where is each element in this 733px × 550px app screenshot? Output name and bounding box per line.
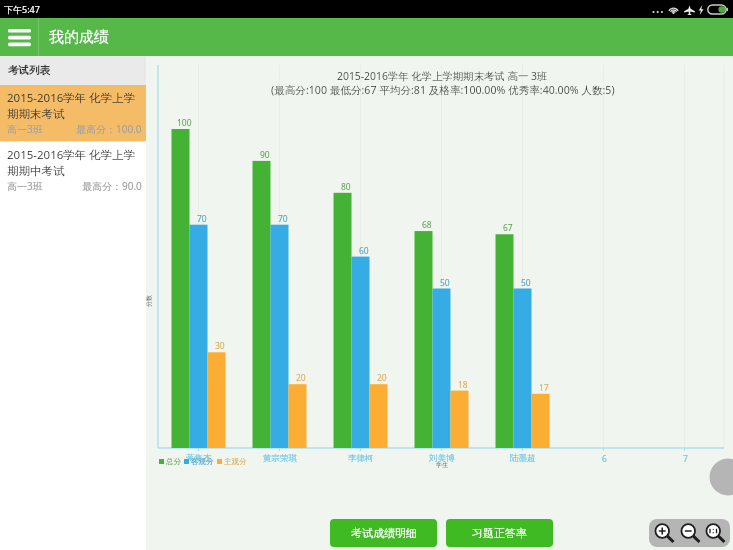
staticText: 67 — [503, 222, 513, 234]
staticText: 20 — [296, 372, 306, 384]
staticText: 我的成绩 — [49, 28, 109, 47]
staticText: 高一3班 — [7, 122, 43, 136]
staticText: 18 — [458, 379, 468, 391]
staticText: 考试列表 — [8, 64, 50, 77]
staticText: 陆墨超 — [510, 453, 536, 464]
button[interactable]: 习题正答率 — [446, 519, 553, 547]
staticText: 20 — [377, 372, 387, 384]
staticText: 李律柯 — [348, 453, 374, 464]
staticText: 80 — [341, 181, 351, 193]
button[interactable]: Zoom in — [653, 523, 675, 543]
staticText: 17 — [539, 382, 549, 394]
staticText: 高一3班 — [7, 179, 43, 193]
button[interactable]: Zoom out — [679, 523, 701, 543]
staticText: 60 — [359, 245, 369, 257]
button[interactable]: 2015-2016学年 化学上学期期中考试 — [0, 142, 146, 198]
staticText: 70 — [278, 213, 288, 225]
staticText: 7 — [683, 453, 688, 465]
staticText: 刘美博 — [429, 453, 455, 464]
staticText: 总分 — [166, 457, 181, 466]
staticText: 最高分：90.0 — [82, 179, 142, 193]
staticText: 30 — [215, 340, 225, 352]
staticText: 最高分：100.0 — [76, 122, 142, 136]
staticText: 分数 — [145, 295, 153, 307]
staticText: 100 — [177, 117, 192, 129]
staticText: 50 — [440, 277, 450, 289]
button[interactable]: Menu — [0, 18, 38, 56]
staticText: 50 — [521, 277, 531, 289]
staticText: 黄宗荣琪 — [263, 453, 297, 464]
staticText: (最高分:100 最低分:67 平均分:81 及格率:100.00% 优秀率:4… — [271, 83, 615, 97]
staticText: 2015-2016学年 化学上学期期末考试 — [7, 90, 142, 121]
staticText: 蒋集杰 — [186, 453, 212, 464]
staticText: 主观分 — [224, 457, 247, 466]
staticText: 90 — [260, 149, 270, 161]
staticText: 68 — [422, 219, 432, 231]
staticText: 学生 — [436, 461, 448, 469]
staticText: 下午5:47 — [4, 3, 40, 15]
staticText: 习题正答率 — [472, 526, 527, 540]
staticText: 考试成绩明细 — [351, 526, 417, 540]
staticText: 2015-2016学年 化学上学期期末考试 高一 3班 — [337, 69, 548, 83]
staticText: 6 — [602, 453, 607, 465]
staticText: 客观分 — [191, 457, 214, 466]
button[interactable]: 考试成绩明细 — [330, 519, 437, 547]
button[interactable]: Reset zoom — [704, 523, 726, 543]
button[interactable]: 2015-2016学年 化学上学期期末考试 — [0, 85, 146, 141]
staticText: 70 — [197, 213, 207, 225]
staticText: 2015-2016学年 化学上学期期中考试 — [7, 147, 142, 178]
